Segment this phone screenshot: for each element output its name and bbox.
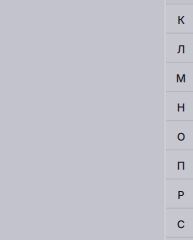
button[interactable]: С — [166, 208, 193, 237]
staticText: М — [176, 72, 186, 85]
staticText: С — [177, 218, 185, 231]
button[interactable]: Л — [166, 33, 193, 62]
button[interactable]: К — [166, 3, 193, 33]
staticText: Л — [177, 43, 185, 56]
button[interactable]: М — [166, 62, 193, 91]
staticText: К — [177, 14, 184, 26]
staticText: Р — [177, 189, 184, 202]
button[interactable]: П — [166, 149, 193, 179]
staticText: Н — [177, 101, 185, 114]
staticText: О — [177, 130, 185, 143]
button[interactable]: Р — [166, 178, 193, 208]
button[interactable]: О — [166, 120, 193, 149]
button[interactable]: Н — [166, 91, 193, 120]
staticText: П — [177, 159, 185, 172]
